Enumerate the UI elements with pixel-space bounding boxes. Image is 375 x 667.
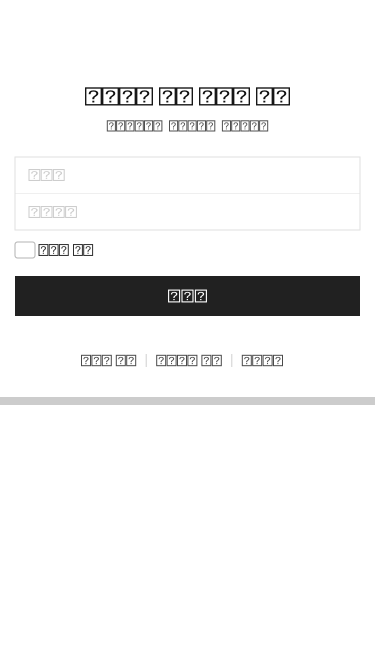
button[interactable] [15,276,360,316]
button[interactable] [242,355,282,366]
button[interactable] [81,355,136,366]
button[interactable] [0,242,375,258]
button[interactable] [157,355,221,366]
